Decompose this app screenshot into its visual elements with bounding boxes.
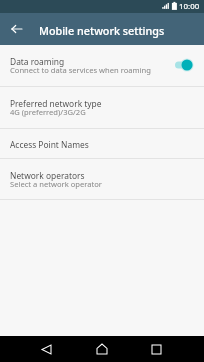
staticText: Mobile network settings bbox=[39, 23, 165, 38]
button[interactable]: Recent apps bbox=[140, 336, 172, 362]
button[interactable]: Access Point Names bbox=[0, 129, 204, 158]
staticText: Select a network operator bbox=[10, 179, 102, 189]
staticText: Preferred network type bbox=[10, 98, 102, 109]
staticText: 10:00 bbox=[179, 1, 200, 12]
staticText: Connect to data services when roaming bbox=[10, 65, 151, 75]
button[interactable]: Back bbox=[30, 336, 62, 362]
button[interactable]: Preferred network type bbox=[0, 87, 204, 128]
button[interactable]: Home bbox=[86, 336, 118, 362]
staticText: Access Point Names bbox=[10, 139, 89, 150]
staticText: 4G (preferred)/3G/2G bbox=[10, 107, 86, 117]
staticText: Data roaming bbox=[10, 56, 65, 67]
button[interactable]: Navigate up bbox=[0, 13, 33, 45]
button[interactable]: Data roaming bbox=[0, 45, 204, 86]
button[interactable]: Data roaming switch bbox=[175, 45, 193, 86]
button[interactable]: Network operators bbox=[0, 159, 204, 199]
staticText: Network operators bbox=[10, 170, 85, 181]
